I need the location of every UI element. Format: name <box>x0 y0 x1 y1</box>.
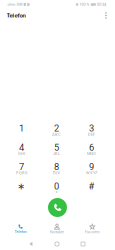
button[interactable]: 1 <box>4 122 39 141</box>
button[interactable]: 5 <box>39 141 74 160</box>
button[interactable]: 0 <box>39 180 74 199</box>
button[interactable]: Telefon <box>3 222 38 235</box>
staticText: Telefon <box>14 229 26 234</box>
button[interactable]: Kontakte <box>39 222 74 235</box>
staticText: 6 <box>89 142 94 153</box>
button[interactable]: 9 <box>74 160 109 180</box>
staticText: # <box>88 181 94 192</box>
button[interactable]: ∗ <box>4 180 39 199</box>
staticText: DEF <box>88 132 95 137</box>
staticText: Telefon <box>6 12 25 19</box>
button[interactable]: 3 <box>74 122 109 141</box>
staticText: 00:34 <box>97 2 106 7</box>
staticText: ABC <box>52 132 61 137</box>
staticText: JKL <box>53 151 60 156</box>
staticText: TUV <box>52 171 60 175</box>
staticText: 1 <box>19 123 24 134</box>
staticText: MNO <box>87 151 96 156</box>
staticText: 7 <box>19 161 24 172</box>
button[interactable]: # <box>74 180 109 199</box>
staticText: 2 <box>54 123 59 134</box>
button[interactable]: 6 <box>74 141 109 160</box>
staticText: ∗ <box>17 181 25 192</box>
staticText: GHI <box>18 151 25 156</box>
staticText: PQRS <box>16 171 27 175</box>
button[interactable]: 8 <box>39 160 74 180</box>
button[interactable]: Back <box>20 239 42 249</box>
button[interactable]: 2 <box>39 122 74 141</box>
staticText: 100 % <box>80 2 90 7</box>
button[interactable]: Recent apps <box>72 239 94 249</box>
staticText: 8 <box>54 161 59 172</box>
button[interactable]: Home <box>46 239 68 249</box>
staticText: + <box>55 190 57 195</box>
staticText: 9 <box>89 161 94 172</box>
staticText: 0 <box>54 181 59 192</box>
staticText: 3 <box>89 123 94 134</box>
staticText: 5 <box>54 142 59 153</box>
button[interactable]: Call <box>48 198 67 217</box>
staticText: WXYZ <box>86 171 97 175</box>
staticText: ohne SIM <box>7 2 22 7</box>
button[interactable]: 7 <box>4 160 39 180</box>
button[interactable]: Favoriten <box>75 222 110 235</box>
button[interactable]: More options <box>100 9 112 21</box>
staticText: 4 <box>19 142 24 153</box>
button[interactable]: 4 <box>4 141 39 160</box>
staticText: Kontakte <box>50 230 64 234</box>
staticText: Favoriten <box>85 230 100 234</box>
